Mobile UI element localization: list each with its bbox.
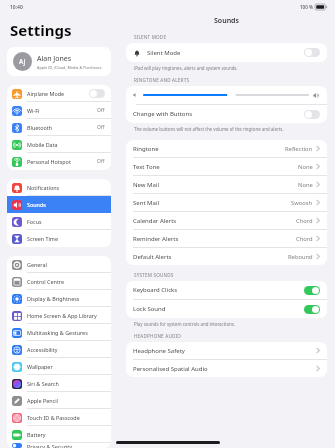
staticText: General	[27, 261, 47, 268]
staticText: Reminder Alerts	[133, 235, 179, 243]
staticText: Keyboard Clicks	[133, 286, 178, 294]
button[interactable]: Reminder Alerts	[126, 230, 327, 247]
staticText: Wi-Fi	[27, 107, 40, 114]
button[interactable]	[304, 286, 320, 295]
button[interactable]: Change with Buttons	[126, 105, 327, 123]
staticText: Default Alerts	[133, 253, 172, 261]
button[interactable]: Sent Mail	[126, 194, 327, 211]
button[interactable]	[227, 91, 236, 100]
staticText: Text Tone	[133, 163, 160, 171]
button[interactable]: Multitasking & Gestures	[7, 324, 111, 341]
button[interactable]	[304, 110, 320, 119]
button[interactable]: AJ	[7, 47, 111, 76]
staticText: Display & Brightness	[27, 295, 80, 302]
staticText: Personalised Spatial Audio	[133, 365, 208, 373]
staticText: None	[298, 163, 313, 171]
button[interactable]: Display & Brightness	[7, 290, 111, 307]
button[interactable]: Screen Time	[7, 230, 111, 247]
staticText: HEADPHONE AUDIO	[134, 333, 182, 339]
staticText: Focus	[27, 218, 42, 225]
button[interactable]	[89, 89, 105, 98]
button[interactable]: Keyboard Clicks	[126, 281, 327, 299]
staticText: The volume buttons will not affect the v…	[134, 126, 284, 132]
staticText: Chord	[296, 235, 313, 243]
button[interactable]: Accessibility	[7, 341, 111, 358]
staticText: Wallpaper	[27, 363, 53, 370]
staticText: Lock Sound	[133, 305, 166, 313]
button[interactable]: Control Centre	[7, 273, 111, 290]
staticText: Calendar Alerts	[133, 217, 177, 225]
button[interactable]: General	[7, 256, 111, 273]
button[interactable]: Sounds	[7, 196, 111, 213]
staticText: Sounds	[214, 16, 239, 26]
staticText: Ringtone	[133, 145, 159, 153]
button[interactable]: Mobile Data	[7, 136, 111, 153]
staticText: Off	[97, 158, 105, 165]
button[interactable]: Airplane Mode	[7, 85, 111, 102]
button[interactable]: Default Alerts	[126, 248, 327, 265]
button[interactable]: Wi-Fi	[7, 102, 111, 119]
button[interactable]: Lock Sound	[126, 300, 327, 318]
button[interactable]: Personalised Spatial Audio	[126, 360, 327, 377]
button[interactable]: Ringtone	[126, 140, 327, 157]
staticText: Bluetooth	[27, 124, 53, 131]
button[interactable]: Home Screen & App Library	[7, 307, 111, 324]
staticText: Settings	[10, 20, 72, 40]
staticText: 10:40	[10, 4, 23, 11]
staticText: Off	[97, 124, 105, 131]
staticText: Accessibility	[27, 346, 58, 353]
button[interactable]: Touch ID & Passcode	[7, 409, 111, 426]
staticText: Screen Time	[27, 235, 58, 242]
button[interactable]: Notifications	[7, 179, 111, 196]
staticText: Sent Mail	[133, 199, 160, 207]
staticText: Notifications	[27, 184, 60, 191]
button[interactable]	[304, 48, 320, 57]
staticText: Change with Buttons	[133, 110, 193, 118]
button[interactable]: Wallpaper	[7, 358, 111, 375]
button[interactable]: Apple Pencil	[7, 392, 111, 409]
staticText: SILENT MODE	[134, 34, 167, 40]
staticText: Touch ID & Passcode	[27, 414, 80, 421]
button[interactable]: Bluetooth	[7, 119, 111, 136]
button[interactable]: Personal Hotspot	[7, 153, 111, 170]
staticText: Privacy & Security	[27, 443, 72, 448]
staticText: 100 %	[300, 4, 313, 10]
staticText: Off	[97, 107, 105, 114]
staticText: Personal Hotspot	[27, 158, 71, 165]
button[interactable]: Silent Mode	[126, 43, 327, 62]
staticText: SYSTEM SOUNDS	[134, 272, 174, 278]
staticText: None	[298, 181, 313, 189]
button[interactable]	[304, 305, 320, 314]
staticText: Control Centre	[27, 278, 65, 285]
staticText: Apple Pencil	[27, 397, 58, 404]
button[interactable]: Battery	[7, 426, 111, 443]
staticText: Reflection	[285, 145, 313, 153]
button[interactable]: Headphone Safety	[126, 342, 327, 359]
button[interactable]: Text Tone	[126, 158, 327, 175]
button[interactable]: Privacy & Security	[7, 443, 111, 448]
staticText: Airplane Mode	[27, 90, 65, 97]
staticText: Battery	[27, 431, 46, 438]
button[interactable]: Focus	[7, 213, 111, 230]
staticText: AJ	[19, 57, 26, 66]
button[interactable]: Siri & Search	[7, 375, 111, 392]
button[interactable]: Calendar Alerts	[126, 212, 327, 229]
staticText: Silent Mode	[147, 49, 181, 57]
staticText: Headphone Safety	[133, 347, 185, 355]
staticText: RINGTONE AND ALERTS	[134, 77, 190, 83]
staticText: New Mail	[133, 181, 160, 189]
staticText: Home Screen & App Library	[27, 312, 97, 319]
button[interactable]: New Mail	[126, 176, 327, 193]
staticText: Swoosh	[291, 199, 313, 207]
staticText: iPad will play ringtones, alerts and sys…	[134, 65, 238, 71]
staticText: Play sounds for system controls and inte…	[134, 321, 236, 327]
staticText: Siri & Search	[27, 380, 59, 387]
staticText: Apple ID, iCloud, Media & Purchases	[37, 65, 102, 70]
staticText: Mobile Data	[27, 141, 58, 148]
staticText: Chord	[296, 217, 313, 225]
staticText: Rebound	[288, 253, 313, 261]
staticText: Alan Jones	[37, 54, 72, 64]
staticText: Multitasking & Gestures	[27, 329, 88, 336]
staticText: Sounds	[27, 201, 46, 208]
